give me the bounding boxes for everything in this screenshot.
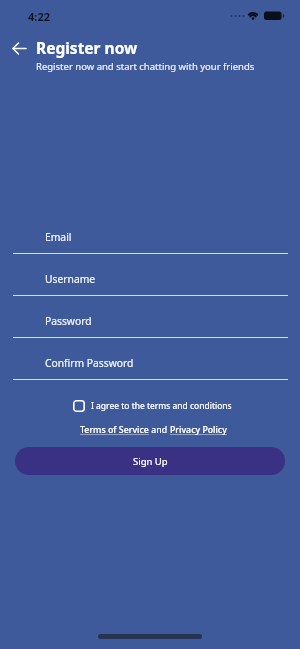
button[interactable]: I agree to the terms and conditions	[73, 400, 232, 412]
button[interactable]: Confirm Password	[0, 338, 300, 380]
button[interactable]: Sign Up	[15, 447, 285, 475]
button[interactable]: Password	[0, 296, 300, 338]
staticText: I agree to the terms and conditions	[91, 400, 232, 412]
staticText: Privacy Policy	[170, 424, 227, 436]
button[interactable]: Privacy Policy	[170, 424, 227, 436]
button[interactable]	[6, 37, 32, 59]
staticText: Password	[45, 314, 92, 328]
staticText: Username	[45, 272, 96, 286]
staticText: Confirm Password	[45, 356, 134, 370]
staticText: Register now	[36, 37, 138, 58]
button[interactable]: Terms of Service	[80, 424, 149, 436]
staticText: Register now and start chatting with you…	[36, 60, 255, 73]
staticText: Email	[45, 230, 72, 244]
staticText: Terms of Service	[80, 424, 149, 436]
staticText: and	[149, 424, 170, 436]
button[interactable]: Username	[0, 254, 300, 296]
staticText: 4:22	[28, 9, 50, 24]
button[interactable]: Email	[0, 212, 300, 254]
staticText: Sign Up	[133, 455, 168, 468]
